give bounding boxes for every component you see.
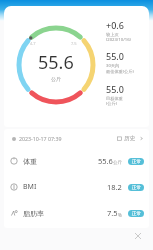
staticText: 公斤: [113, 160, 122, 166]
staticText: 体重: [23, 157, 37, 166]
staticText: +0.6: [106, 19, 124, 31]
button[interactable]: 2023-10-17 07:39: [4, 129, 149, 148]
staticText: 较上次: [106, 32, 119, 37]
button[interactable]: 体重: [4, 148, 149, 174]
staticText: 正常: [132, 159, 141, 165]
staticText: 55.0: [106, 50, 124, 62]
staticText: 目标体重: [106, 96, 123, 101]
button[interactable]: Close: [132, 230, 144, 242]
button[interactable]: 脂肪率: [4, 200, 149, 226]
staticText: 55.6: [98, 156, 113, 166]
staticText: 55.6: [38, 50, 74, 75]
staticText: 2023-10-17 07:39: [19, 135, 62, 142]
staticText: 18.2: [107, 182, 122, 192]
staticText: 正常: [132, 185, 141, 191]
button[interactable]: BMI: [4, 174, 149, 200]
staticText: BMI: [23, 182, 37, 192]
staticText: 30天内: [106, 63, 120, 69]
staticText: 最佳体重(公斤): [106, 69, 134, 75]
staticText: 7.5: [107, 208, 118, 218]
staticText: 公斤: [51, 76, 61, 82]
staticText: 4.7: [30, 41, 36, 46]
staticText: 历史: [124, 135, 136, 142]
staticText: 7.5: [71, 41, 77, 46]
staticText: 55.0: [106, 83, 124, 95]
staticText: %: [118, 212, 122, 218]
staticText: (2023/10/16): [106, 37, 131, 43]
staticText: 正常: [132, 211, 141, 217]
staticText: 脂肪率: [23, 209, 44, 218]
staticText: (公斤): [106, 101, 117, 107]
